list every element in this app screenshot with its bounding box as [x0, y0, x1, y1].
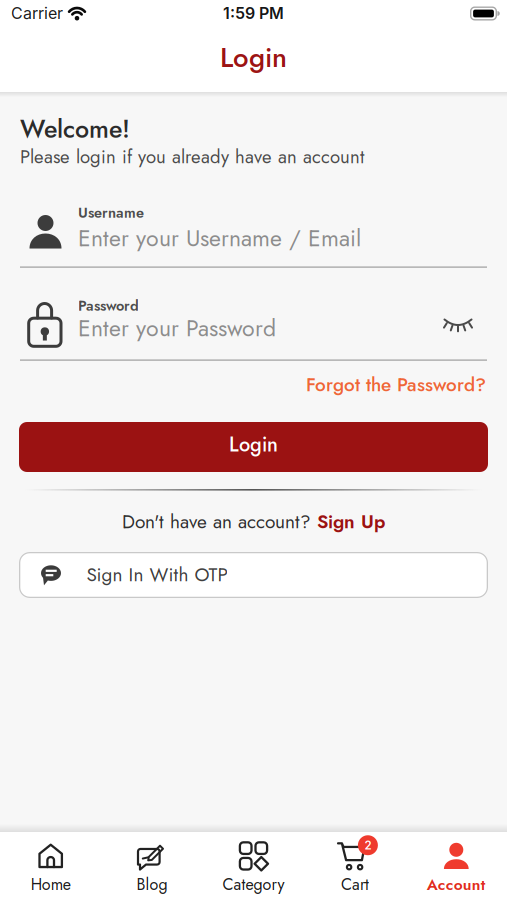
staticText: Login	[220, 37, 287, 77]
button[interactable]: Sign Up	[317, 508, 385, 535]
staticText: Login	[229, 430, 278, 459]
button[interactable]: Show password	[435, 309, 481, 343]
button[interactable]: Home	[0, 833, 101, 899]
staticText: Password	[78, 295, 139, 316]
staticText: Sign In With OTP	[86, 561, 227, 588]
staticText: Please login if you already have an acco…	[20, 143, 364, 170]
staticText: Welcome!	[20, 111, 130, 147]
staticText: Sign Up	[317, 508, 385, 535]
staticText: Enter your Username / Email	[78, 222, 361, 255]
staticText: Category	[222, 873, 284, 896]
staticText: Username	[78, 202, 144, 223]
button[interactable]: Sign In With OTP	[19, 552, 488, 598]
button[interactable]: Password	[0, 290, 507, 361]
button[interactable]: 2	[304, 833, 406, 899]
button[interactable]: Username	[0, 196, 507, 268]
button[interactable]: Category	[203, 833, 304, 899]
button[interactable]: Account	[406, 833, 507, 899]
staticText: 1:59 PM	[223, 3, 284, 23]
staticText: Forgot the Password?	[306, 371, 486, 398]
staticText: Home	[31, 873, 71, 896]
staticText: Don't have an account?	[122, 508, 311, 535]
button[interactable]: Blog	[101, 833, 203, 899]
staticText: Blog	[137, 873, 168, 896]
staticText: 2	[364, 838, 371, 852]
staticText: Carrier	[11, 3, 63, 23]
staticText: Enter your Password	[78, 312, 276, 345]
staticText: Cart	[341, 873, 369, 896]
button[interactable]: Forgot the Password?	[306, 371, 486, 398]
button[interactable]: Login	[19, 422, 488, 472]
staticText: Account	[427, 873, 486, 896]
